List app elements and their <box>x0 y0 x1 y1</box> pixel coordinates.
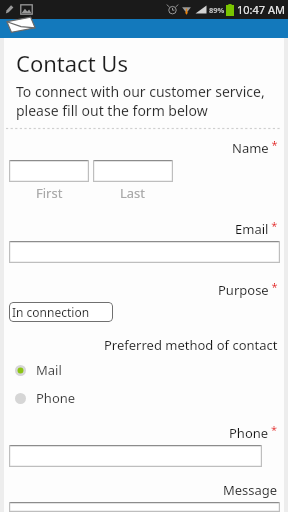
staticText: Preferred method of contact <box>104 336 278 354</box>
button[interactable]: In connection <box>9 302 113 322</box>
button[interactable] <box>9 502 280 512</box>
staticText: Mail <box>36 361 62 379</box>
button[interactable]: Phone <box>4 388 284 408</box>
staticText: Purpose * <box>218 279 278 299</box>
staticText: First <box>36 184 63 202</box>
staticText: 10:47 AM <box>237 2 285 17</box>
staticText: Last <box>120 184 146 202</box>
staticText: Contact Us <box>16 48 128 78</box>
staticText: Phone <box>36 389 76 407</box>
staticText: Name * <box>232 137 278 157</box>
button[interactable]: Mail <box>5 16 37 35</box>
staticText: Phone * <box>229 422 278 442</box>
staticText: In connection <box>12 304 90 320</box>
button[interactable] <box>9 445 262 467</box>
button[interactable]: Mail <box>4 360 284 380</box>
button[interactable] <box>9 241 280 263</box>
staticText: To connect with our customer service, pl… <box>16 82 265 120</box>
staticText: Message <box>223 481 278 499</box>
staticText: 89% <box>209 5 225 15</box>
staticText: Email * <box>235 218 278 238</box>
button[interactable] <box>93 160 173 182</box>
button[interactable] <box>9 160 89 182</box>
